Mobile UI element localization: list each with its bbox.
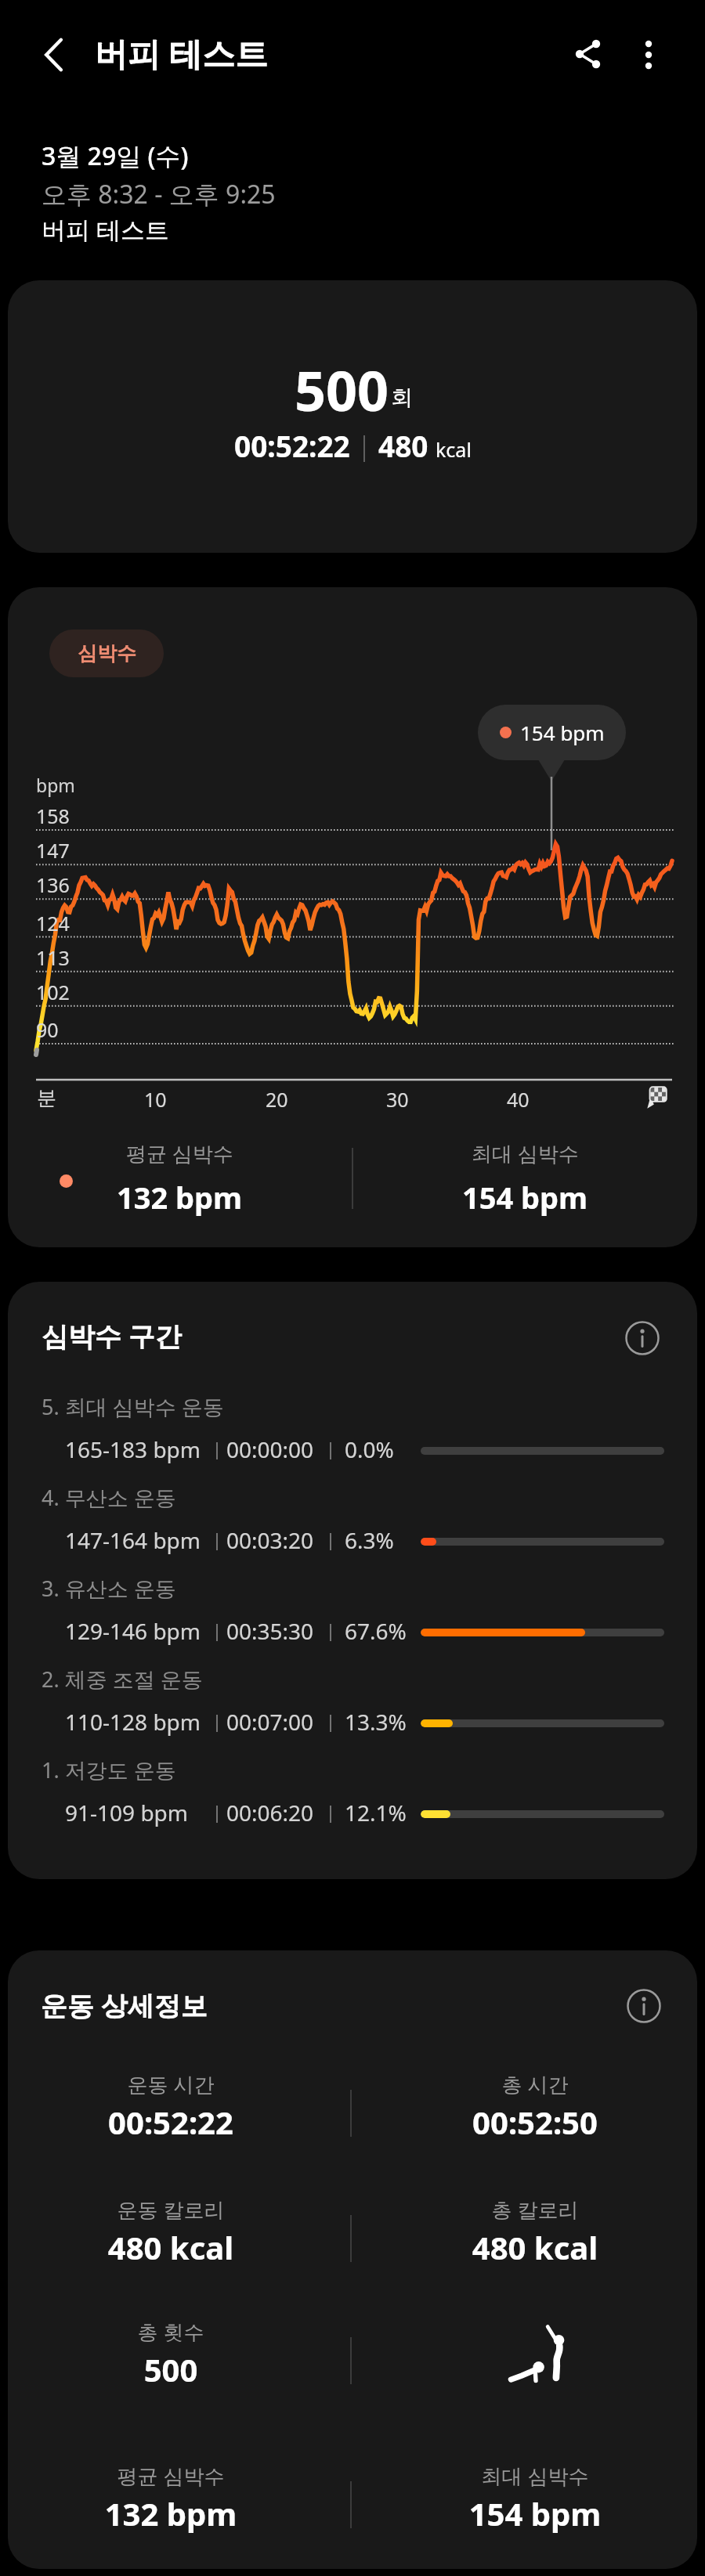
staticText: 총 시간 (378, 2070, 692, 2098)
staticText: 147-164 bpm (65, 1525, 201, 1555)
button[interactable]: 154 bpm (478, 705, 626, 760)
staticText: 6.3% (345, 1525, 394, 1555)
staticText: bpm (36, 773, 75, 797)
staticText: kcal (436, 436, 472, 463)
button[interactable]: Heart rate zone info (620, 1316, 664, 1360)
staticText: 158 (36, 803, 70, 829)
staticText: 12.1% (345, 1798, 407, 1827)
staticText: 운동 상세정보 (41, 1987, 208, 2023)
staticText: 129-146 bpm (65, 1616, 201, 1646)
staticText: 13.3% (345, 1707, 407, 1737)
staticText: 90 (36, 1016, 59, 1043)
staticText: 20 (266, 1086, 288, 1113)
staticText: 2. 체중 조절 운동 (42, 1665, 203, 1694)
staticText: 회 (391, 384, 413, 411)
staticText: 버피 테스트 (42, 213, 170, 246)
staticText: 30 (386, 1086, 409, 1113)
staticText: 124 (36, 910, 70, 936)
staticText: 136 (36, 871, 70, 898)
staticText: 40 (507, 1086, 530, 1113)
button[interactable]: More options (625, 31, 672, 78)
staticText: 00:00:00 (226, 1434, 314, 1464)
staticText: 480 (378, 426, 428, 465)
staticText: 67.6% (345, 1616, 407, 1646)
staticText: 91-109 bpm (65, 1798, 188, 1827)
button[interactable]: Workout details info (622, 1984, 666, 2028)
staticText: 1. 저강도 운동 (42, 1755, 176, 1784)
staticText: 최대 심박수 (378, 2462, 692, 2490)
staticText: 154 bpm (462, 1177, 588, 1218)
staticText: 110-128 bpm (65, 1707, 201, 1737)
staticText: 147 (36, 837, 70, 864)
staticText: 오후 8:32 - 오후 9:25 (42, 177, 276, 211)
staticText: 00:07:00 (226, 1707, 314, 1737)
staticText: 평균 심박수 (126, 1139, 233, 1167)
staticText: 500 (14, 2348, 327, 2390)
button[interactable]: Back (27, 31, 74, 78)
staticText: 00:52:22 (234, 426, 350, 465)
staticText: 102 (36, 979, 70, 1005)
staticText: 최대 심박수 (472, 1139, 579, 1167)
staticText: 00:52:22 (14, 2101, 327, 2143)
staticText: 평균 심박수 (14, 2462, 327, 2490)
staticText: 3. 유산소 운동 (42, 1574, 176, 1603)
staticText: 132 bpm (14, 2492, 327, 2535)
staticText: 운동 칼로리 (14, 2195, 327, 2224)
staticText: 113 (36, 944, 70, 971)
button[interactable]: Share (567, 31, 616, 80)
staticText: 심박수 구간 (42, 1318, 182, 1354)
staticText: 분 (37, 1086, 56, 1110)
staticText: 버피 테스트 (95, 31, 268, 75)
staticText: 00:03:20 (226, 1525, 314, 1555)
button[interactable]: 심박수 (49, 630, 164, 677)
staticText: 총 횟수 (14, 2318, 327, 2346)
staticText: 00:52:50 (378, 2101, 692, 2143)
staticText: 165-183 bpm (65, 1434, 201, 1464)
staticText: 500 (295, 352, 389, 427)
staticText: 00:35:30 (226, 1616, 314, 1646)
staticText: 심박수 (78, 641, 136, 666)
staticText: 0.0% (345, 1434, 394, 1464)
staticText: 5. 최대 심박수 운동 (42, 1392, 224, 1421)
staticText: 4. 무산소 운동 (42, 1483, 176, 1512)
staticText: 10 (144, 1086, 167, 1113)
staticText: 운동 시간 (14, 2070, 327, 2098)
staticText: 총 칼로리 (378, 2195, 692, 2224)
staticText: 154 bpm (378, 2492, 692, 2535)
staticText: 480 kcal (378, 2226, 692, 2268)
staticText: 480 kcal (14, 2226, 327, 2268)
staticText: 00:06:20 (226, 1798, 314, 1827)
staticText: 132 bpm (117, 1177, 243, 1218)
staticText: 154 bpm (520, 719, 605, 746)
staticText: 3월 29일 (수) (42, 139, 189, 173)
